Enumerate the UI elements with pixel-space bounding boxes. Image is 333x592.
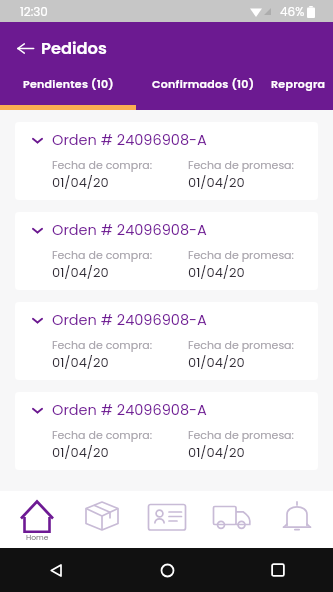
- staticText: Orden # 24096908-A: [52, 310, 207, 330]
- staticText: 01/04/20: [52, 443, 109, 461]
- button[interactable]: Orden # 24096908-A: [15, 302, 318, 380]
- staticText: Home: [26, 532, 49, 542]
- button[interactable]: Orden # 24096908-A: [15, 122, 318, 200]
- staticText: Fecha de promesa:: [188, 247, 294, 262]
- staticText: Fecha de compra:: [52, 157, 153, 172]
- staticText: Pendientes (10): [23, 76, 114, 91]
- staticText: 01/04/20: [188, 263, 245, 281]
- button[interactable]: Recent apps: [261, 553, 295, 587]
- staticText: 46%: [280, 3, 305, 20]
- staticText: Fecha de promesa:: [188, 157, 294, 172]
- staticText: Fecha de compra:: [52, 427, 153, 442]
- staticText: 01/04/20: [188, 173, 245, 191]
- staticText: 01/04/20: [188, 443, 245, 461]
- button[interactable]: Home: [4, 491, 69, 548]
- button[interactable]: Reprogramados (10): [271, 68, 333, 105]
- button[interactable]: Orden # 24096908-A: [15, 212, 318, 290]
- button[interactable]: Home: [150, 553, 184, 587]
- staticText: Confirmados (10): [152, 76, 255, 91]
- staticText: 12:30: [20, 3, 48, 20]
- staticText: Fecha de compra:: [52, 337, 153, 352]
- button[interactable]: Pendientes (10): [1, 68, 136, 105]
- button[interactable]: Back: [39, 553, 73, 587]
- staticText: Orden # 24096908-A: [52, 130, 207, 150]
- button[interactable]: Delivery: [199, 491, 264, 548]
- button[interactable]: Contacts: [134, 491, 199, 548]
- button[interactable]: Notifications: [264, 491, 329, 548]
- button[interactable]: Packages: [69, 491, 134, 548]
- staticText: Fecha de promesa:: [188, 337, 294, 352]
- staticText: Pedidos: [41, 37, 107, 60]
- staticText: Orden # 24096908-A: [52, 220, 207, 240]
- staticText: 01/04/20: [188, 353, 245, 371]
- staticText: 01/04/20: [52, 173, 109, 191]
- button[interactable]: Confirmados (10): [136, 68, 271, 105]
- staticText: Fecha de compra:: [52, 247, 153, 262]
- staticText: Fecha de promesa:: [188, 427, 294, 442]
- staticText: Reprogramados (10): [271, 76, 333, 91]
- button[interactable]: Back: [15, 38, 35, 58]
- button[interactable]: Orden # 24096908-A: [15, 392, 318, 470]
- staticText: 01/04/20: [52, 263, 109, 281]
- staticText: 01/04/20: [52, 353, 109, 371]
- staticText: Orden # 24096908-A: [52, 400, 207, 420]
